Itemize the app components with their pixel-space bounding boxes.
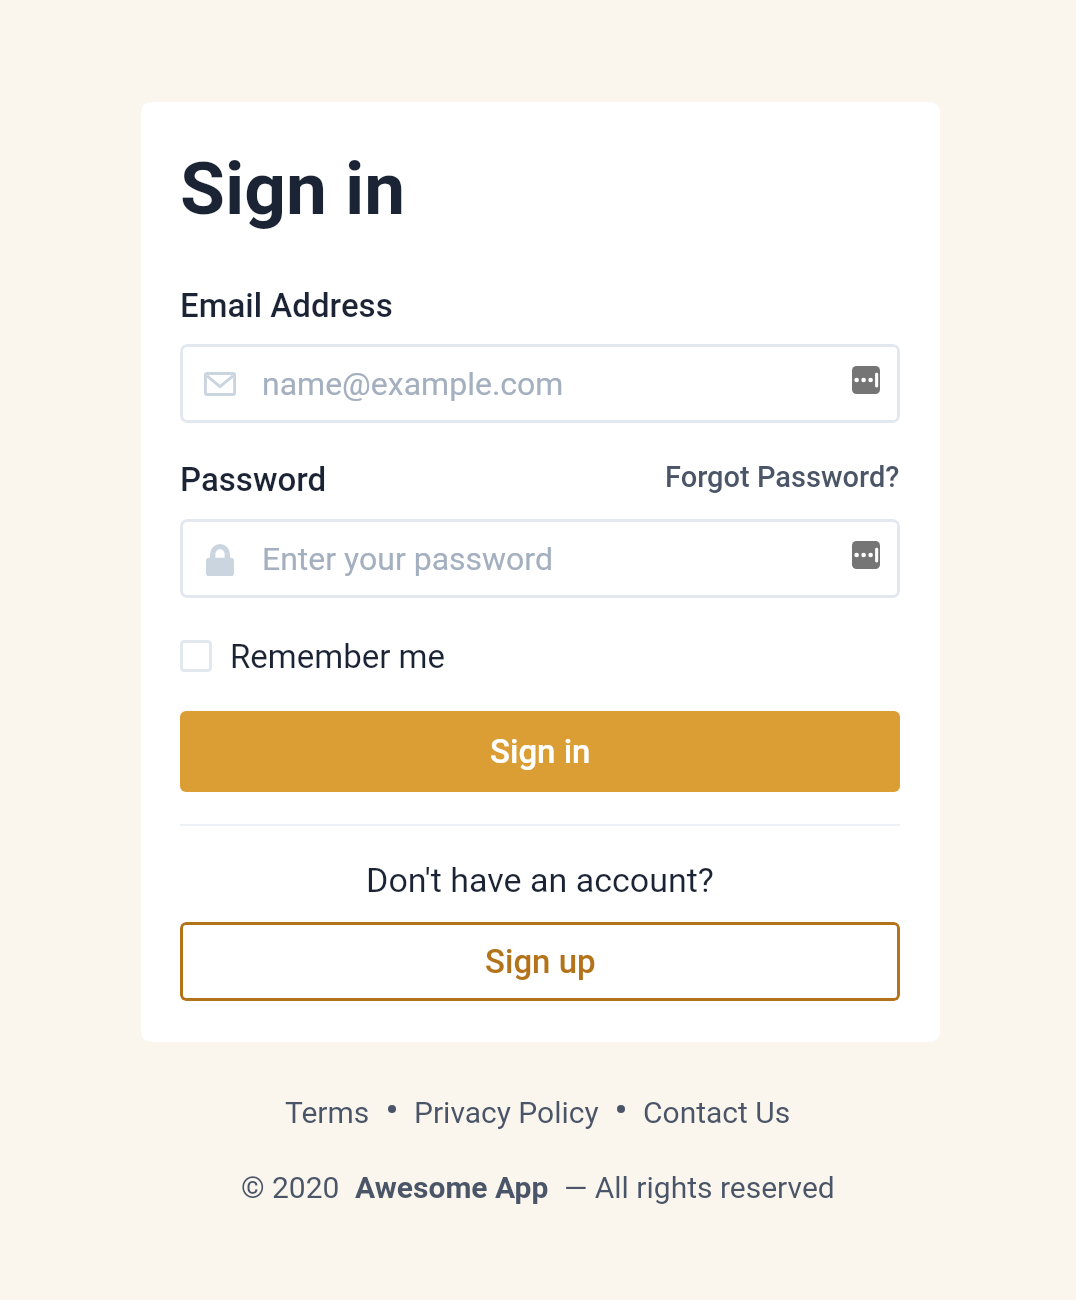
button[interactable]: Sign in: [180, 711, 900, 792]
staticText: Remember me: [230, 637, 446, 676]
button[interactable]: Forgot Password?: [620, 454, 900, 500]
staticText: Don't have an account?: [366, 860, 714, 900]
staticText: name@example.com: [262, 365, 564, 403]
staticText: Sign up: [485, 942, 596, 981]
button[interactable]: Sign up: [180, 922, 900, 1001]
button[interactable]: Privacy Policy: [414, 1095, 599, 1130]
staticText: Sign in: [180, 146, 406, 232]
staticText: Password: [180, 460, 327, 499]
button[interactable]: Password input field: [180, 519, 900, 598]
button[interactable]: Contact Us: [643, 1095, 791, 1130]
staticText: Privacy Policy: [414, 1095, 599, 1130]
staticText: Contact Us: [643, 1095, 791, 1130]
staticText: Terms: [285, 1095, 370, 1130]
staticText: Sign in: [490, 732, 591, 771]
staticText: — All rights reserved: [549, 1170, 835, 1205]
staticText: Awesome App: [355, 1170, 549, 1205]
button[interactable]: Terms: [285, 1095, 370, 1130]
button[interactable]: Email address input field: [180, 344, 900, 423]
staticText: Enter your password: [262, 540, 553, 578]
staticText: Forgot Password?: [665, 460, 900, 494]
staticText: © 2020: [241, 1170, 355, 1205]
staticText: Email Address: [180, 286, 393, 325]
button[interactable]: Remember me: [180, 636, 446, 676]
